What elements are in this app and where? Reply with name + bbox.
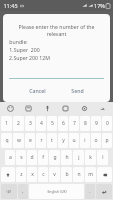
staticText: s bbox=[20, 154, 23, 161]
staticText: u bbox=[72, 137, 76, 144]
button[interactable]: Cancel bbox=[25, 85, 50, 96]
staticText: o bbox=[94, 137, 98, 144]
button[interactable]: t bbox=[47, 133, 57, 148]
staticText: 4 bbox=[40, 120, 43, 127]
button[interactable]: i bbox=[80, 133, 90, 148]
button[interactable]: Emoji bbox=[5, 103, 16, 114]
staticText: bundle: bbox=[9, 38, 28, 45]
button[interactable]: , bbox=[18, 184, 28, 199]
staticText: n bbox=[77, 171, 81, 178]
button[interactable]: 4 bbox=[36, 116, 46, 131]
staticText: j bbox=[78, 154, 80, 161]
staticText: 7 bbox=[73, 120, 76, 127]
staticText: 1 bbox=[5, 120, 8, 127]
staticText: 0 bbox=[106, 120, 109, 127]
button[interactable]: 8 bbox=[80, 116, 90, 131]
button[interactable]: Shift bbox=[1, 167, 15, 182]
staticText: d bbox=[30, 154, 34, 161]
staticText: 3 bbox=[29, 120, 32, 127]
button[interactable]: 0 bbox=[102, 116, 112, 131]
button[interactable]: 5 bbox=[47, 116, 57, 131]
button[interactable]: u bbox=[69, 133, 79, 148]
button[interactable]: English (UK) bbox=[29, 184, 84, 199]
staticText: c bbox=[42, 171, 45, 178]
staticText: a bbox=[9, 154, 12, 161]
staticText: q bbox=[5, 137, 9, 144]
button[interactable]: Text input field bbox=[9, 72, 104, 79]
button[interactable]: l bbox=[97, 150, 108, 165]
button[interactable]: e bbox=[25, 133, 35, 148]
staticText: k bbox=[89, 154, 92, 161]
button[interactable]: a bbox=[5, 150, 15, 165]
staticText: f bbox=[42, 154, 44, 161]
staticText: 9 bbox=[95, 120, 98, 127]
staticText: p bbox=[105, 137, 109, 144]
button[interactable]: g bbox=[49, 150, 60, 165]
staticText: l bbox=[102, 154, 104, 161]
button[interactable]: s bbox=[16, 150, 26, 165]
staticText: m bbox=[88, 171, 93, 178]
staticText: , bbox=[22, 188, 24, 195]
button[interactable]: k bbox=[85, 150, 96, 165]
staticText: g bbox=[53, 154, 57, 161]
button[interactable]: n bbox=[73, 167, 84, 182]
button[interactable]: Send bbox=[67, 85, 88, 96]
button[interactable]: c bbox=[38, 167, 48, 182]
staticText: 6 bbox=[62, 120, 65, 127]
button[interactable]: r bbox=[36, 133, 46, 148]
button[interactable]: Settings bbox=[79, 103, 90, 114]
button[interactable]: o bbox=[91, 133, 101, 148]
staticText: 5 bbox=[51, 120, 54, 127]
staticText: Cancel bbox=[29, 87, 46, 94]
button[interactable]: Stickers bbox=[23, 103, 34, 114]
staticText: Send bbox=[71, 87, 84, 94]
button[interactable]: 1 bbox=[1, 116, 12, 131]
staticText: e bbox=[29, 137, 32, 144]
button[interactable]: !#1 bbox=[1, 184, 17, 199]
button[interactable]: h bbox=[61, 150, 72, 165]
staticText: 11:45 bbox=[3, 2, 18, 9]
button[interactable]: w bbox=[13, 133, 24, 148]
button[interactable]: Voice input bbox=[42, 103, 53, 114]
staticText: 2 bbox=[17, 120, 20, 127]
staticText: 17% bbox=[94, 2, 105, 9]
button[interactable]: x bbox=[27, 167, 37, 182]
button[interactable]: 3 bbox=[25, 116, 35, 131]
button[interactable]: 6 bbox=[58, 116, 68, 131]
staticText: y bbox=[62, 137, 65, 144]
staticText: 1.Super 200 bbox=[9, 46, 40, 53]
button[interactable]: f bbox=[38, 150, 48, 165]
button[interactable]: Clipboard bbox=[60, 103, 71, 114]
staticText: x bbox=[31, 171, 34, 178]
button[interactable]: q bbox=[1, 133, 12, 148]
staticText: Please enter the number of the relevant bbox=[9, 23, 104, 37]
button[interactable]: v bbox=[49, 167, 60, 182]
staticText: b bbox=[65, 171, 69, 178]
staticText: i bbox=[84, 137, 86, 144]
staticText: English (UK) bbox=[47, 189, 67, 194]
staticText: !#1 bbox=[6, 189, 12, 194]
button[interactable]: Backspace bbox=[97, 167, 112, 182]
button[interactable]: 7 bbox=[69, 116, 79, 131]
button[interactable]: More options bbox=[97, 103, 108, 114]
staticText: z bbox=[20, 171, 23, 178]
staticText: r bbox=[40, 137, 43, 144]
staticText: v bbox=[53, 171, 56, 178]
staticText: h bbox=[65, 154, 69, 161]
button[interactable]: Enter bbox=[96, 184, 112, 199]
staticText: t bbox=[51, 137, 53, 144]
button[interactable]: p bbox=[102, 133, 112, 148]
button[interactable]: 9 bbox=[91, 116, 101, 131]
staticText: 2.Super 200 12M bbox=[9, 54, 50, 61]
button[interactable]: j bbox=[73, 150, 84, 165]
button[interactable]: m bbox=[85, 167, 96, 182]
staticText: 8 bbox=[84, 120, 87, 127]
button[interactable]: d bbox=[27, 150, 37, 165]
button[interactable]: y bbox=[58, 133, 68, 148]
button[interactable]: 2 bbox=[13, 116, 24, 131]
button[interactable]: b bbox=[61, 167, 72, 182]
button[interactable]: z bbox=[16, 167, 26, 182]
staticText: w bbox=[17, 137, 21, 144]
staticText: . bbox=[89, 188, 91, 195]
